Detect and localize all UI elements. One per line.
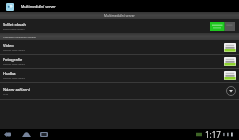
staticText: Všechny složky alfreny (3, 63, 25, 66)
button[interactable]: Sdílet obsah (0, 19, 239, 33)
button[interactable]: Toggle (224, 43, 236, 52)
staticText: Multimediální server (104, 14, 135, 18)
button[interactable]: Video (0, 40, 239, 54)
button[interactable]: Toggle (224, 57, 236, 66)
button[interactable]: Sdílet obsah switch (210, 22, 235, 31)
staticText: Hudba (3, 71, 16, 76)
staticText: Všechny složky alfreny (3, 77, 25, 80)
staticText: Multimediální server (21, 4, 56, 9)
staticText: A100 (3, 93, 8, 96)
button[interactable]: Fotografie (0, 55, 239, 68)
button[interactable]: Expand (226, 86, 236, 96)
staticText: Fotografie (3, 57, 23, 62)
staticText: Sdílet obsah (3, 22, 26, 27)
button[interactable]: Název zařízení (0, 83, 239, 99)
button[interactable]: Home (19, 129, 34, 140)
staticText: Název zařízení (3, 87, 30, 92)
staticText: Povolit sdílení obsahu (3, 28, 25, 31)
button[interactable]: Recent apps (37, 129, 50, 140)
button[interactable]: App icon (6, 3, 14, 11)
button[interactable]: Back (1, 129, 14, 140)
button[interactable]: Hudba (0, 69, 239, 82)
staticText: 1:17 (205, 129, 221, 140)
staticText: Všechny složky alfreny (3, 49, 25, 52)
button[interactable]: Toggle (224, 71, 236, 80)
staticText: Nastavení sdíleného obsahu (3, 35, 37, 38)
staticText: Video (3, 43, 14, 48)
